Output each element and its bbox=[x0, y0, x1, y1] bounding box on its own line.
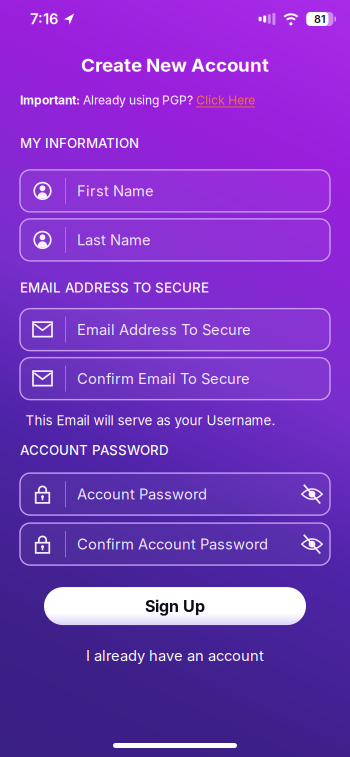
staticText: Already using PGP? bbox=[83, 93, 196, 107]
button[interactable]: Confirm Account Password bbox=[20, 523, 330, 565]
staticText: Last Name bbox=[77, 231, 151, 249]
staticText: MY INFORMATION bbox=[20, 135, 139, 151]
button[interactable]: Confirm Email To Secure bbox=[20, 358, 330, 400]
staticText: 7:16 bbox=[30, 10, 58, 28]
staticText: Confirm Account Password bbox=[77, 535, 268, 553]
button[interactable]: Show password bbox=[301, 483, 330, 505]
button[interactable]: Account Password bbox=[20, 473, 330, 515]
button[interactable]: Last Name bbox=[20, 219, 330, 261]
staticText: Important: bbox=[20, 93, 83, 107]
staticText: Sign Up bbox=[145, 597, 205, 616]
staticText: Create New Account bbox=[81, 54, 269, 76]
staticText: I already have an account bbox=[86, 647, 264, 664]
button[interactable]: I already have an account bbox=[86, 647, 264, 664]
staticText: Confirm Email To Secure bbox=[77, 370, 250, 387]
staticText: 81 bbox=[314, 13, 326, 25]
button[interactable]: Sign Up bbox=[44, 587, 306, 625]
staticText: First Name bbox=[77, 182, 154, 200]
staticText: EMAIL ADDRESS TO SECURE bbox=[20, 280, 209, 296]
button[interactable]: Click Here bbox=[196, 93, 255, 107]
button[interactable]: Email Address To Secure bbox=[20, 309, 330, 351]
staticText: Email Address To Secure bbox=[77, 321, 251, 338]
staticText: Click Here bbox=[196, 93, 255, 107]
staticText: This Email will serve as your Username. bbox=[25, 413, 275, 428]
button[interactable]: First Name bbox=[20, 170, 330, 212]
staticText: Account Password bbox=[77, 485, 207, 503]
button[interactable]: Show password bbox=[301, 533, 330, 555]
staticText: ACCOUNT PASSWORD bbox=[20, 442, 169, 458]
